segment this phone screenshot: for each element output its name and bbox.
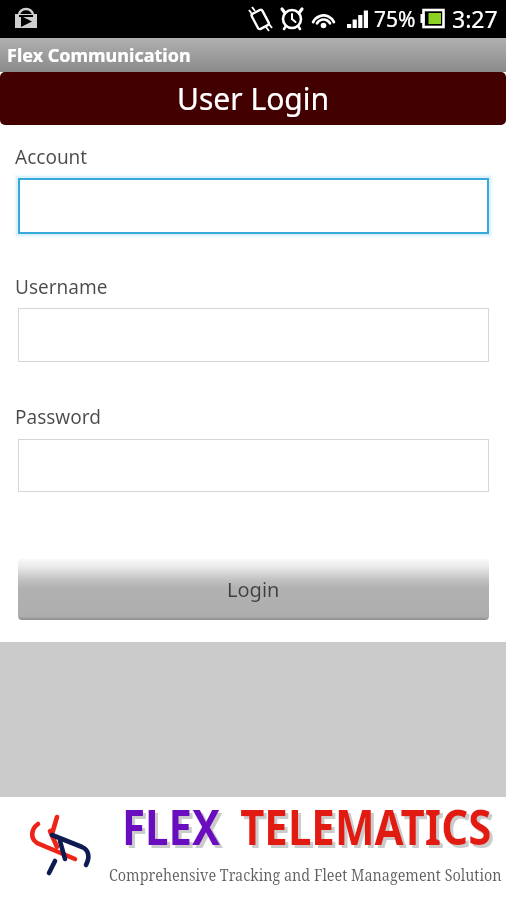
button[interactable]: Login xyxy=(18,559,489,620)
staticText: TELEMATICS xyxy=(240,794,492,859)
staticText: Username xyxy=(15,274,108,300)
button[interactable]: Account input field xyxy=(18,178,489,234)
staticText: 3:27 xyxy=(452,3,498,34)
staticText: 75% xyxy=(374,5,416,34)
staticText: FLEX xyxy=(125,797,224,862)
staticText: Account xyxy=(15,144,88,170)
staticText: Login xyxy=(227,576,280,603)
button[interactable]: Account input field xyxy=(14,174,493,238)
staticText: FLEX xyxy=(122,794,221,859)
staticText: TELEMATICS xyxy=(243,797,495,862)
button[interactable]: Username input field xyxy=(18,308,489,362)
staticText: Flex Communication xyxy=(7,43,191,68)
staticText: Password xyxy=(15,404,101,430)
staticText: User Login xyxy=(177,78,330,119)
staticText: Comprehensive Tracking and Fleet Managem… xyxy=(109,863,502,886)
button[interactable]: User Login xyxy=(0,72,506,125)
button[interactable]: Password input field xyxy=(18,439,489,492)
